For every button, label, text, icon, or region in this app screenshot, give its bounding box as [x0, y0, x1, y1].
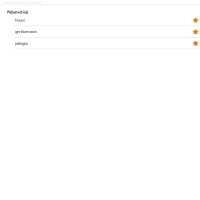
button[interactable]: house — [0, 14, 200, 26]
staticText: gerbiamasis — [15, 29, 37, 34]
staticText: Pažymėtieji — [7, 9, 28, 14]
staticText: Lietuvių kalbos žodynas — [2, 0, 42, 5]
staticText: patogus — [15, 40, 28, 46]
button[interactable]: gerbiamasis — [0, 26, 200, 38]
button[interactable]: patogus — [0, 38, 200, 49]
staticText: house — [15, 17, 25, 23]
